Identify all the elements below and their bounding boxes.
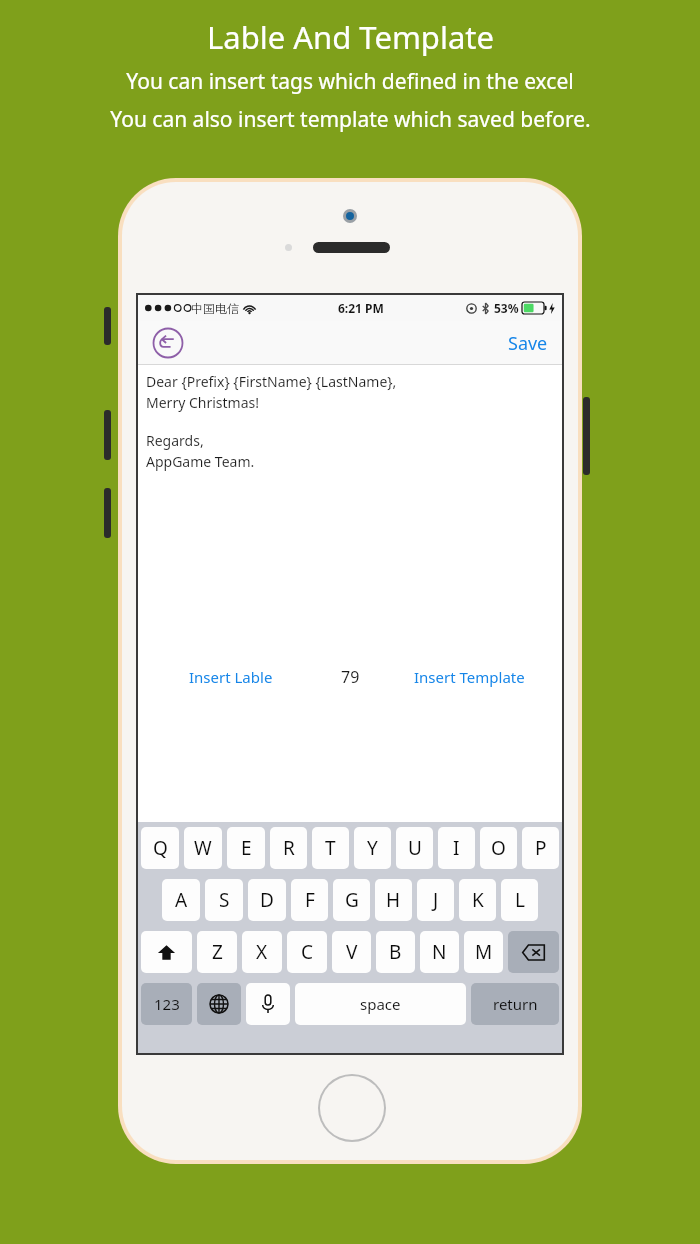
button[interactable]: V <box>332 931 371 973</box>
staticText: J <box>433 887 439 913</box>
button[interactable]: C <box>287 931 327 973</box>
button[interactable]: Home <box>318 1074 386 1142</box>
button[interactable]: L <box>501 879 538 921</box>
button[interactable]: A <box>162 879 200 921</box>
staticText: R <box>283 835 295 861</box>
staticText: Merry Christmas! <box>146 393 260 412</box>
staticText: T <box>325 835 336 861</box>
staticText: H <box>386 887 401 913</box>
button[interactable]: I <box>438 827 475 869</box>
staticText: Insert Template <box>414 667 525 687</box>
button[interactable]: P <box>522 827 559 869</box>
button[interactable]: R <box>270 827 307 869</box>
staticText: F <box>305 887 315 913</box>
button[interactable]: Backspace <box>508 931 559 973</box>
staticText: Save <box>508 331 548 356</box>
button[interactable]: space <box>295 983 466 1025</box>
staticText: U <box>408 835 422 861</box>
button[interactable]: Z <box>197 931 237 973</box>
button[interactable]: Y <box>354 827 391 869</box>
button[interactable]: F <box>291 879 328 921</box>
staticText: D <box>260 887 274 913</box>
staticText: 中国电信 <box>191 301 239 316</box>
button[interactable]: 123 <box>141 983 192 1025</box>
staticText: L <box>515 887 525 913</box>
staticText: S <box>219 887 230 913</box>
staticText: A <box>175 887 188 913</box>
staticText: 123 <box>154 994 180 1014</box>
button[interactable]: X <box>242 931 282 973</box>
button[interactable]: Shift <box>141 931 192 973</box>
staticText: I <box>453 835 460 861</box>
button[interactable]: Dictate <box>246 983 290 1025</box>
button[interactable]: Back <box>152 327 184 359</box>
button[interactable]: K <box>459 879 496 921</box>
staticText: AppGame Team. <box>146 452 255 471</box>
button[interactable]: M <box>464 931 503 973</box>
button[interactable]: Change keyboard <box>197 983 241 1025</box>
button[interactable]: B <box>376 931 415 973</box>
staticText: O <box>491 835 506 861</box>
staticText: Z <box>212 939 223 965</box>
staticText: X <box>256 939 268 965</box>
button[interactable]: W <box>184 827 222 869</box>
staticText: 6:21 PM <box>338 300 384 316</box>
staticText: V <box>346 939 358 965</box>
staticText: You can insert tags which defined in the… <box>126 67 574 96</box>
button[interactable]: Save <box>494 323 562 364</box>
staticText: Regards, <box>146 431 204 450</box>
button[interactable]: E <box>227 827 265 869</box>
staticText: E <box>241 835 252 861</box>
staticText: K <box>472 887 484 913</box>
staticText: W <box>194 835 212 861</box>
staticText: You can also insert template which saved… <box>110 105 591 134</box>
staticText: 79 <box>341 666 360 688</box>
staticText: B <box>389 939 402 965</box>
button[interactable]: N <box>420 931 459 973</box>
button[interactable]: Insert Lable <box>183 661 279 693</box>
staticText: return <box>493 994 538 1014</box>
staticText: Insert Lable <box>189 667 273 687</box>
button[interactable]: O <box>480 827 517 869</box>
staticText: C <box>301 939 314 965</box>
button[interactable]: return <box>471 983 559 1025</box>
staticText: 53% <box>494 300 519 316</box>
staticText: P <box>535 835 547 861</box>
staticText: Dear {Prefix} {FirstName} {LastName}, <box>146 372 397 391</box>
button[interactable]: S <box>205 879 243 921</box>
staticText: M <box>475 939 493 965</box>
staticText: Lable And Template <box>207 16 494 58</box>
button[interactable]: Q <box>141 827 179 869</box>
staticText: G <box>345 887 359 913</box>
button[interactable]: D <box>248 879 286 921</box>
button[interactable]: U <box>396 827 433 869</box>
staticText: Y <box>367 835 378 861</box>
staticText: Q <box>153 835 168 861</box>
button[interactable]: Insert Template <box>408 661 531 693</box>
button[interactable]: G <box>333 879 370 921</box>
button[interactable]: J <box>417 879 454 921</box>
button[interactable]: H <box>375 879 412 921</box>
button[interactable]: T <box>312 827 349 869</box>
staticText: space <box>360 994 401 1014</box>
staticText: N <box>432 939 447 965</box>
